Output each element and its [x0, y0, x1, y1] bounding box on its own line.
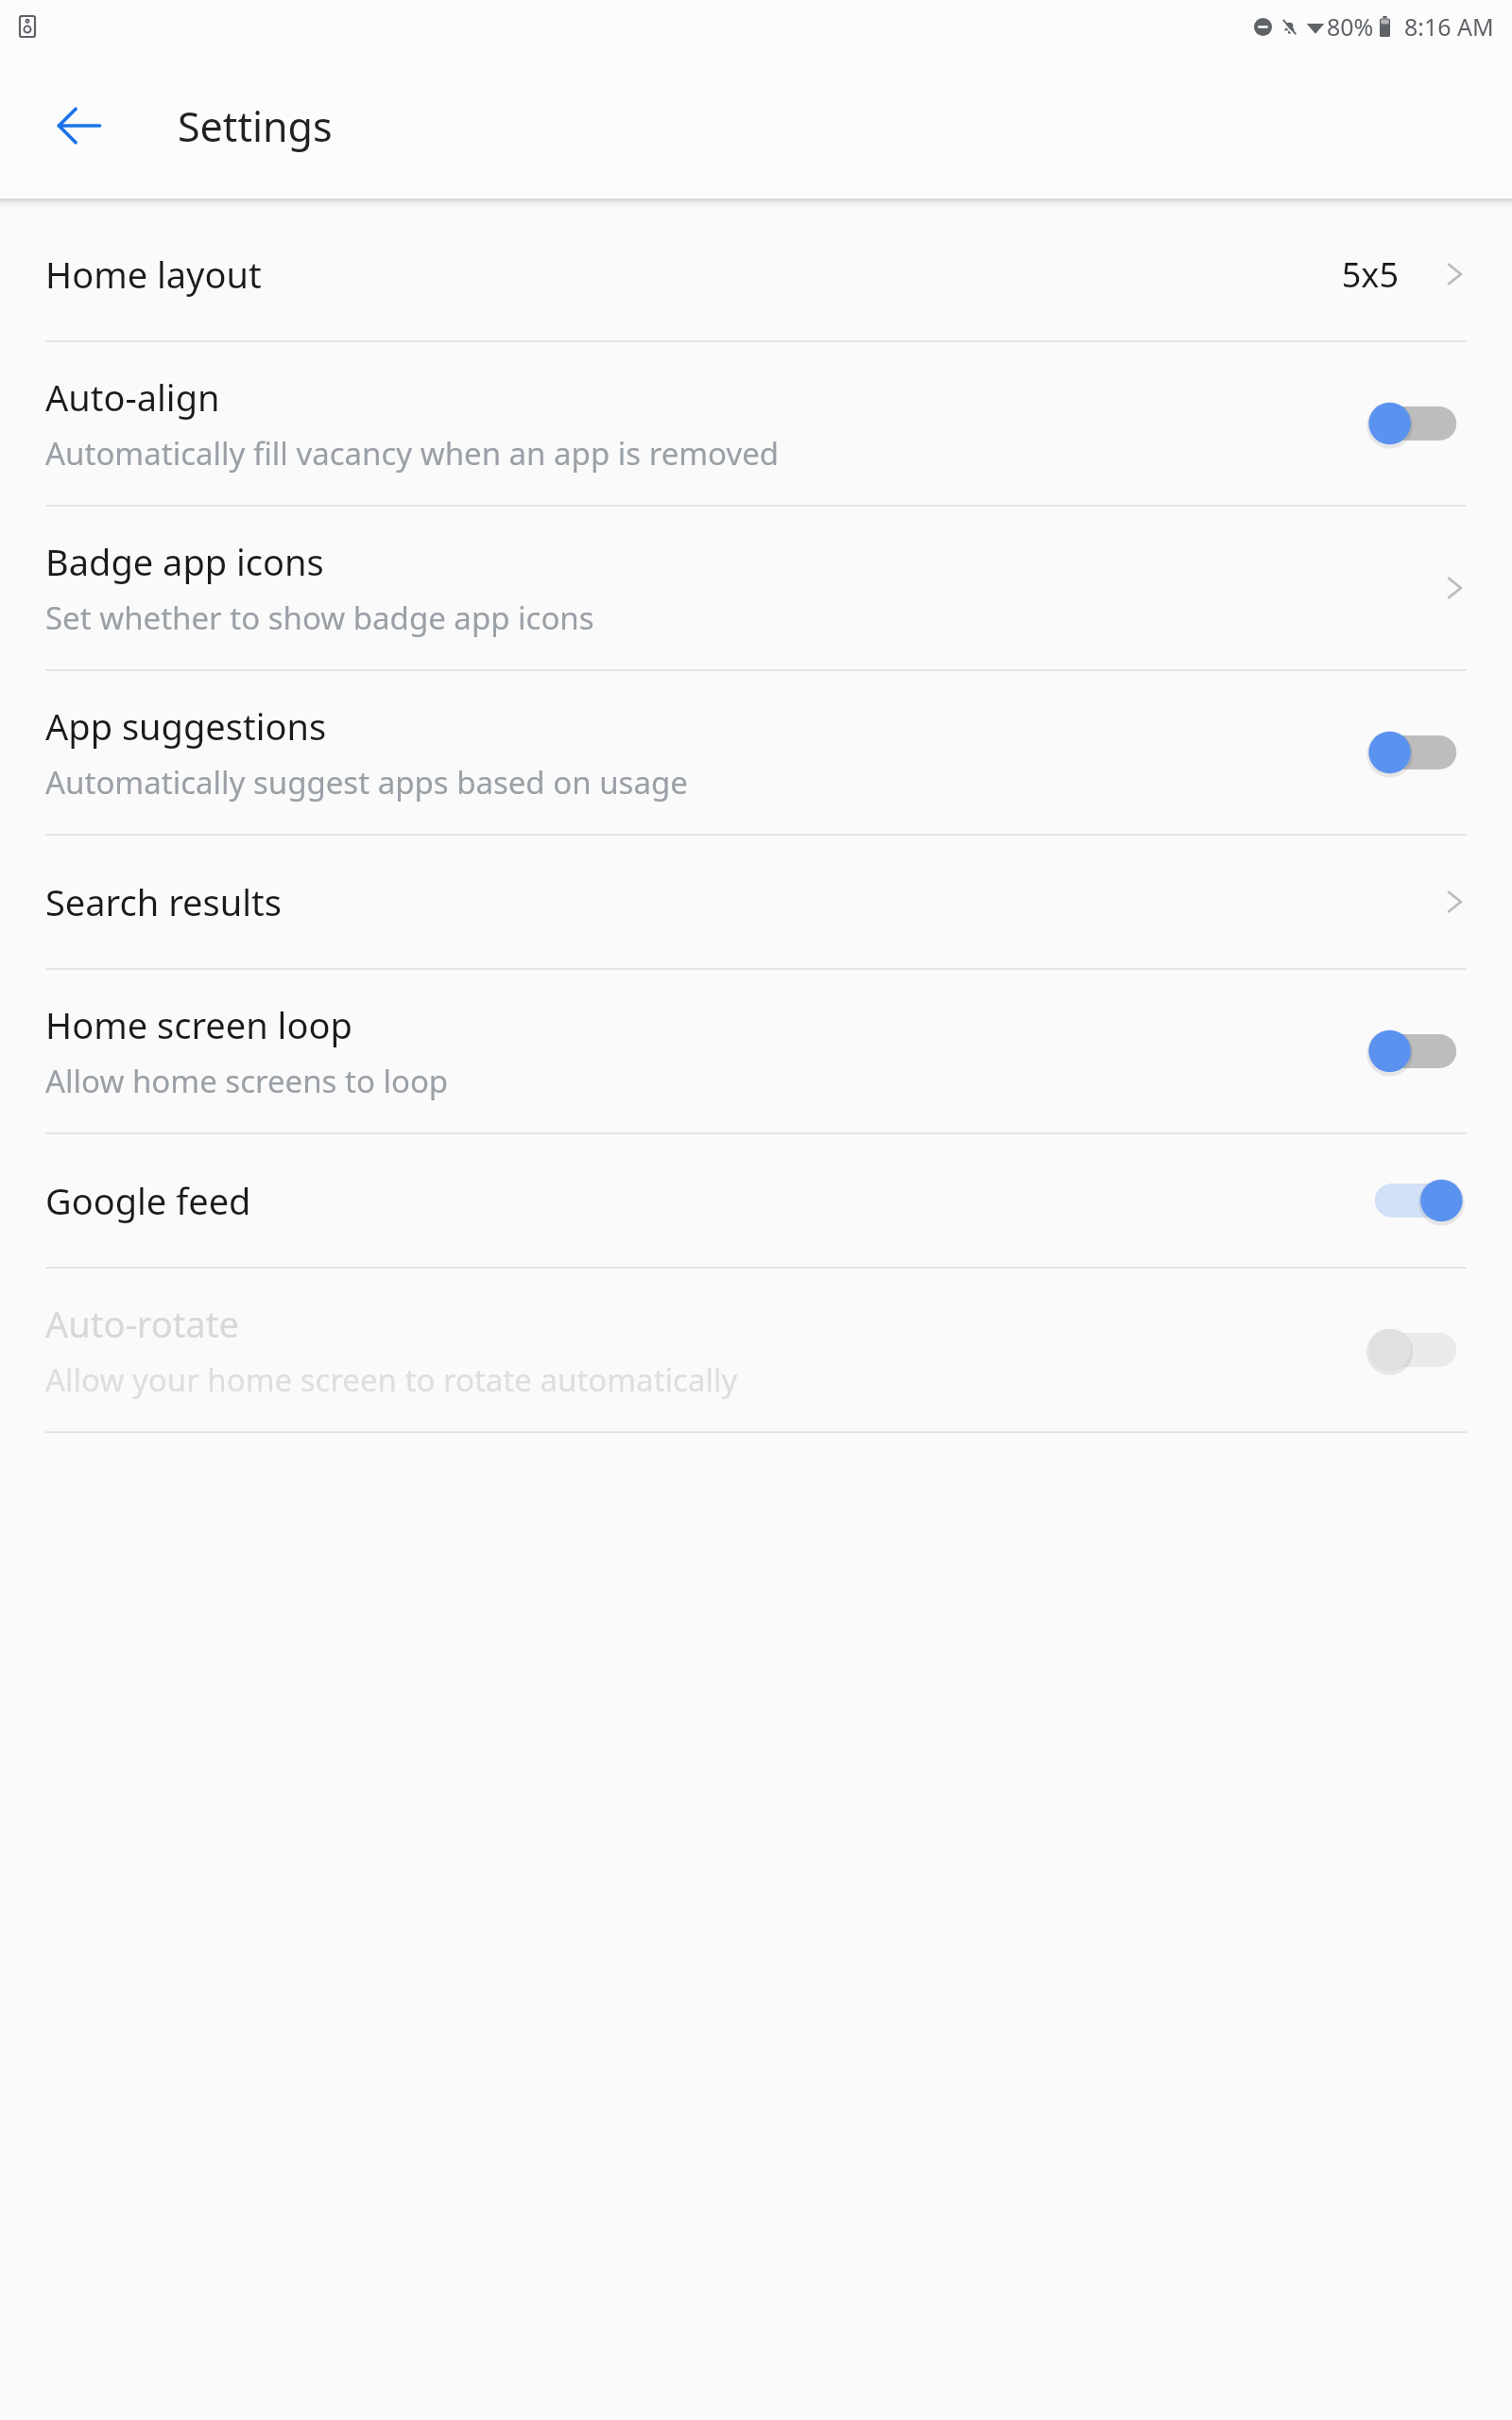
button[interactable]: Badge app icons: [0, 507, 1512, 669]
staticText: Auto-rotate: [45, 1299, 239, 1348]
button[interactable]: Google feed: [0, 1134, 1512, 1267]
button[interactable]: Toggle: [1365, 1321, 1467, 1379]
button[interactable]: App suggestions: [0, 671, 1512, 834]
staticText: Set whether to show badge app icons: [45, 596, 594, 639]
staticText: Google feed: [45, 1176, 251, 1225]
button[interactable]: Back: [49, 96, 108, 155]
staticText: 80%: [1327, 10, 1374, 43]
button[interactable]: Home screen loop: [0, 970, 1512, 1132]
staticText: Search results: [45, 877, 282, 926]
button[interactable]: Search results: [0, 836, 1512, 968]
staticText: Home screen loop: [45, 1000, 352, 1049]
staticText: Settings: [178, 98, 333, 154]
staticText: Automatically suggest apps based on usag…: [45, 761, 688, 804]
staticText: Allow home screens to loop: [45, 1060, 449, 1102]
staticText: Home layout: [45, 250, 262, 299]
button[interactable]: Toggle: [1365, 1022, 1467, 1080]
staticText: 5x5: [1341, 251, 1399, 298]
staticText: Allow your home screen to rotate automat…: [45, 1358, 738, 1401]
button[interactable]: Toggle: [1365, 394, 1467, 453]
staticText: 8:16 AM: [1404, 10, 1494, 43]
staticText: App suggestions: [45, 701, 327, 751]
button[interactable]: Auto-align: [0, 342, 1512, 505]
staticText: Auto-align: [45, 372, 220, 422]
button[interactable]: Home layout: [0, 208, 1512, 340]
staticText: Badge app icons: [45, 537, 324, 586]
button[interactable]: Toggle: [1365, 723, 1467, 782]
staticText: Automatically fill vacancy when an app i…: [45, 432, 780, 475]
button[interactable]: Toggle: [1365, 1171, 1467, 1230]
button[interactable]: Auto-rotate: [0, 1269, 1512, 1431]
